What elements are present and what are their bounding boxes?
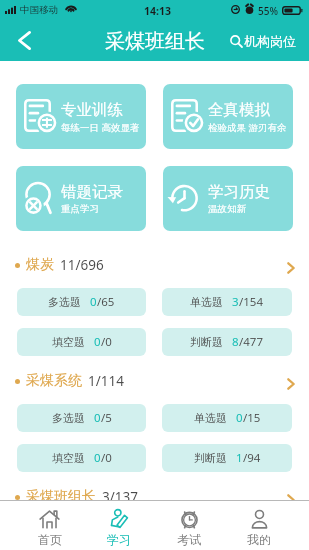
staticText: 8 <box>232 334 239 350</box>
staticText: 采煤系统 <box>26 372 82 390</box>
button[interactable]: 填空题 <box>17 328 146 356</box>
button[interactable]: 采煤系统 <box>0 370 309 392</box>
button[interactable]: 单选题 <box>162 520 292 548</box>
staticText: 多选题 <box>52 411 85 425</box>
staticText: /94 <box>243 450 261 466</box>
staticText: /65 <box>97 294 115 310</box>
staticText: 判断题 <box>190 335 223 349</box>
button[interactable]: 填空题 <box>17 444 146 472</box>
staticText: /0 <box>101 334 112 350</box>
button[interactable]: 学习 <box>84 501 154 550</box>
button[interactable]: 采煤班组长 <box>0 486 309 508</box>
staticText: 专业训练 <box>61 100 123 120</box>
staticText: 单选题 <box>190 295 223 309</box>
staticText: 1 <box>236 450 243 466</box>
staticText: 重点学习 <box>61 203 99 215</box>
staticText: 机构岗位 <box>244 33 296 49</box>
staticText: 1/114 <box>88 372 124 390</box>
button[interactable]: 判断题 <box>162 328 292 356</box>
button[interactable]: 多选题 <box>17 288 146 316</box>
button[interactable]: 单选题 <box>162 404 292 432</box>
staticText: 学习 <box>107 532 131 547</box>
staticText: /5 <box>101 410 112 426</box>
staticText: 填空题 <box>52 335 85 349</box>
staticText: 0 <box>90 294 97 310</box>
staticText: 中国移动 <box>20 4 58 16</box>
staticText: 3/137 <box>102 488 138 506</box>
staticText: 多选题 <box>48 295 81 309</box>
staticText: 填空题 <box>52 451 85 465</box>
staticText: 全真模拟 <box>208 100 270 120</box>
staticText: 我的 <box>247 532 271 547</box>
staticText: 煤炭 <box>26 256 54 274</box>
staticText: /477 <box>239 334 264 350</box>
staticText: 0 <box>94 450 101 466</box>
staticText: 多选题 <box>52 527 85 541</box>
staticText: 0 <box>94 334 101 350</box>
staticText: 判断题 <box>194 451 227 465</box>
staticText: /0 <box>101 526 112 542</box>
staticText: 单选题 <box>197 527 230 541</box>
staticText: 55% <box>258 4 278 18</box>
button[interactable]: 错题记录 <box>16 166 146 231</box>
button[interactable]: 全真模拟 <box>163 84 293 149</box>
staticText: /154 <box>239 294 264 310</box>
staticText: 0 <box>236 410 243 426</box>
staticText: 每练一日 高效显著 <box>61 121 140 134</box>
staticText: 采煤班组长 <box>26 488 96 506</box>
staticText: 3 <box>232 294 239 310</box>
staticText: 11/696 <box>60 256 104 274</box>
staticText: 首页 <box>38 532 62 547</box>
staticText: 单选题 <box>194 411 227 425</box>
button[interactable]: 多选题 <box>17 404 146 432</box>
staticText: 检验成果 游刃有余 <box>208 121 287 134</box>
staticText: 错题记录 <box>61 182 123 202</box>
staticText: 14:13 <box>144 4 171 18</box>
staticText: 温故知新 <box>208 203 246 215</box>
button[interactable]: Back <box>0 20 41 61</box>
button[interactable]: 煤炭 <box>0 254 309 276</box>
staticText: 0 <box>94 410 101 426</box>
button[interactable]: 学习历史 <box>163 166 293 231</box>
button[interactable]: 专业训练 <box>16 84 146 149</box>
staticText: /15 <box>243 410 261 426</box>
button[interactable]: 判断题 <box>162 444 292 472</box>
button[interactable]: 我的 <box>224 501 294 550</box>
staticText: 学习历史 <box>208 182 270 202</box>
staticText: /0 <box>101 450 112 466</box>
staticText: /0 <box>246 526 257 542</box>
button[interactable]: 多选题 <box>17 520 146 548</box>
button[interactable]: 单选题 <box>162 288 292 316</box>
button[interactable]: 首页 <box>15 501 84 550</box>
button[interactable]: 机构岗位 <box>224 33 309 49</box>
staticText: 采煤班组长 <box>105 29 205 54</box>
staticText: 考试 <box>177 532 201 547</box>
button[interactable]: 考试 <box>154 501 224 550</box>
